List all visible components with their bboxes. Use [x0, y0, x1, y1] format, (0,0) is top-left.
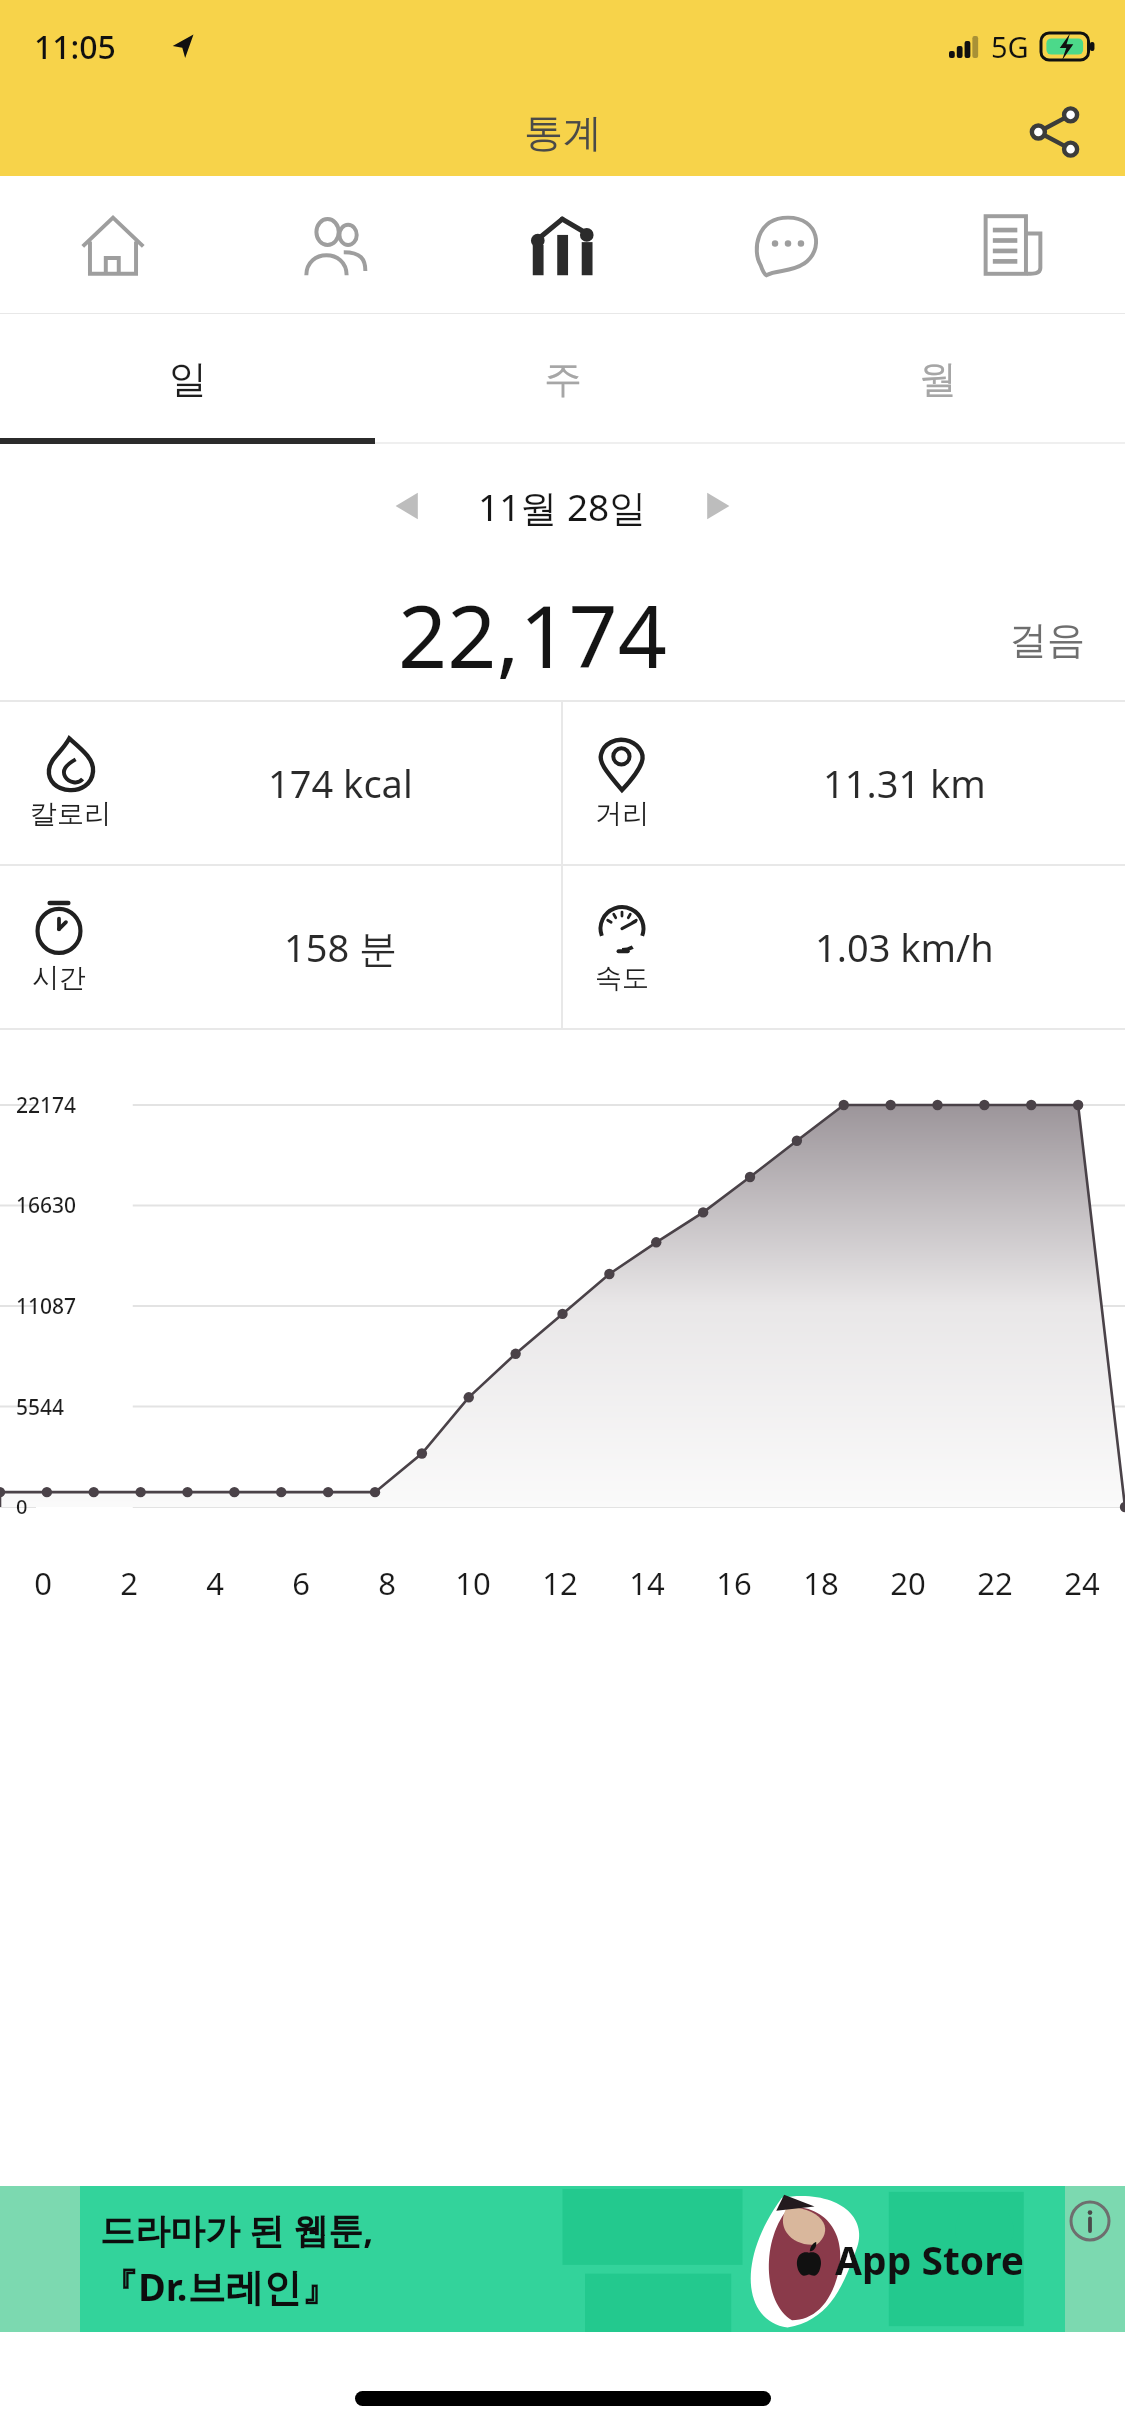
button[interactable]: News	[900, 176, 1125, 313]
staticText: 속도	[595, 961, 649, 995]
button[interactable]: 속도	[563, 866, 1125, 1028]
button[interactable]: 주	[375, 314, 750, 444]
staticText: 11:05	[34, 25, 116, 69]
button[interactable]: Statistics	[450, 176, 675, 313]
staticText: 24	[1064, 1562, 1100, 1604]
staticText: 16	[716, 1562, 752, 1604]
staticText: 칼로리	[30, 797, 111, 831]
staticText: 11087	[16, 1292, 77, 1321]
staticText: 22	[977, 1562, 1013, 1604]
button[interactable]: Home	[0, 176, 225, 313]
staticText: 11.31 km	[823, 757, 986, 809]
staticText: 11월 28일	[478, 481, 647, 532]
button[interactable]: 칼로리	[0, 702, 561, 864]
button[interactable]: Previous day	[372, 471, 442, 541]
staticText: 1.03 km/h	[815, 921, 994, 973]
button[interactable]: Friends	[225, 176, 450, 313]
staticText: 18	[803, 1562, 839, 1604]
button[interactable]: 드라마가 된 웹툰,	[0, 2186, 1125, 2332]
staticText: 5544	[16, 1393, 65, 1422]
button[interactable]: Next day	[683, 471, 753, 541]
staticText: 0	[34, 1562, 52, 1604]
staticText: 6	[292, 1562, 310, 1604]
staticText: 통계	[524, 108, 602, 157]
staticText: 14	[629, 1562, 665, 1604]
staticText: 174 kcal	[268, 757, 413, 809]
staticText: 8	[378, 1562, 396, 1604]
staticText: 『Dr.브레인』	[100, 2260, 340, 2312]
staticText: 20	[890, 1562, 926, 1604]
staticText: 0	[16, 1493, 28, 1520]
staticText: 드라마가 된 웹툰,	[100, 2206, 374, 2254]
staticText: 22174	[16, 1091, 77, 1120]
button[interactable]: 시간	[0, 866, 561, 1028]
staticText: 걸음	[1009, 616, 1085, 664]
staticText: 12	[542, 1562, 578, 1604]
button[interactable]: 월	[750, 314, 1125, 444]
staticText: 일	[169, 355, 207, 403]
staticText: 4	[206, 1562, 224, 1604]
staticText: App Store	[835, 2233, 1025, 2286]
button[interactable]: 일	[0, 314, 375, 444]
staticText: 시간	[32, 961, 86, 995]
button[interactable]: Share	[1013, 90, 1097, 174]
staticText: 10	[455, 1562, 491, 1604]
staticText: 월	[919, 355, 957, 403]
staticText: 16630	[16, 1191, 77, 1220]
staticText: 5G	[991, 27, 1029, 66]
staticText: 22,174	[398, 576, 668, 693]
staticText: 주	[544, 355, 582, 403]
staticText: 2	[120, 1562, 138, 1604]
staticText: 거리	[595, 797, 649, 831]
staticText: 158 분	[284, 921, 398, 973]
button[interactable]: 거리	[563, 702, 1125, 864]
button[interactable]: Ad info	[1065, 2196, 1115, 2246]
button[interactable]: Chat	[675, 176, 900, 313]
